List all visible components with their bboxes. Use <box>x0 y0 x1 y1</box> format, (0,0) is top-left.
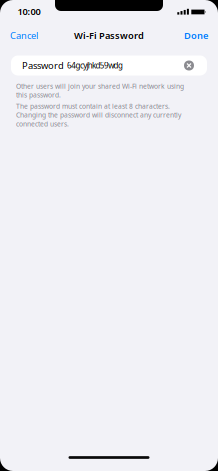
staticText: Wi-Fi Password <box>74 29 144 42</box>
staticText: Done <box>184 29 208 42</box>
staticText: Other users will join your shared Wi-Fi … <box>16 82 184 99</box>
button[interactable]: Done <box>184 29 208 42</box>
staticText: 64gcyjhkd59wdg <box>67 60 123 71</box>
staticText: Cancel <box>10 29 38 42</box>
staticText: Password <box>22 59 64 72</box>
staticText: The password must contain at least 8 cha… <box>16 102 181 128</box>
button[interactable]: Password <box>11 55 207 75</box>
button[interactable]: Clear text <box>184 60 194 70</box>
staticText: 10:00 <box>17 5 40 18</box>
button[interactable]: Cancel <box>10 29 38 42</box>
